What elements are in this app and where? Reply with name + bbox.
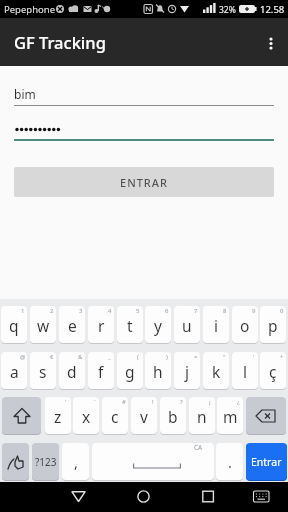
button[interactable]: r [88,306,114,343]
staticText: u [182,315,192,336]
button[interactable]: p [260,306,286,343]
button[interactable]: u [174,306,200,343]
staticText: ?123 [35,455,57,469]
button[interactable]: k [203,352,229,389]
button[interactable] [245,482,278,512]
staticText: ' [65,398,67,406]
staticText: ! [152,398,154,406]
button[interactable]: ENTRAR [14,167,274,197]
button[interactable]: l [232,352,258,389]
button[interactable]: i [203,306,229,343]
button[interactable]: s [30,352,56,389]
staticText: r [98,315,105,336]
staticText: 5 [136,307,140,315]
button[interactable] [2,397,41,434]
button[interactable]: g [117,352,143,389]
button[interactable]: n [189,397,215,434]
button[interactable] [62,482,95,512]
staticText: 32% [219,4,236,16]
staticText: s [39,361,47,382]
staticText: p [268,315,278,336]
staticText: q [9,315,19,336]
button[interactable]: c [102,397,128,434]
staticText: bim [14,86,36,102]
button[interactable]: d [59,352,85,389]
button[interactable]: b [160,397,186,434]
staticText: 4 [108,307,112,315]
button[interactable]: , [62,443,89,480]
staticText: x [82,406,91,427]
staticText: g [125,361,135,382]
staticText: GF Tracking [14,31,106,53]
button[interactable]: t [117,306,143,343]
staticText: ) [166,353,168,361]
staticText: ( [137,353,139,361]
staticText: m [223,406,238,427]
button[interactable]: m [217,397,243,434]
button[interactable]: z [45,397,71,434]
button[interactable]: . [216,443,243,480]
button[interactable]: v [131,397,157,434]
button[interactable]: w [30,306,56,343]
staticText: ? [180,398,183,406]
staticText: k [212,361,221,382]
staticText: 1 [21,307,25,315]
staticText: , [74,452,78,472]
button[interactable] [127,482,160,512]
staticText: 8 [223,307,227,315]
staticText: a [10,361,19,382]
staticText: e [68,315,77,336]
staticText: 9 [252,307,256,315]
staticText: l [243,361,247,382]
staticText: z [54,406,62,427]
staticText: + [280,353,284,361]
button[interactable] [246,397,286,434]
button[interactable]: j [174,352,200,389]
button[interactable]: x [73,397,99,434]
button[interactable]: ?123 [32,443,59,480]
button[interactable]: y [145,306,171,343]
button[interactable]: ç [260,352,286,389]
staticText: ¨ [93,398,97,406]
staticText: ç [269,361,277,382]
staticText: ENTRAR [120,175,168,190]
button[interactable] [191,482,224,512]
button[interactable] [2,443,29,480]
staticText: ¡ [209,398,211,406]
button[interactable] [258,29,284,55]
staticText: j [185,361,189,382]
staticText: c [111,406,119,427]
staticText: CA [194,443,203,452]
staticText: w [37,315,50,336]
staticText: b [168,406,178,427]
staticText: _ [108,353,111,361]
staticText: h [153,361,163,382]
button[interactable]: q [1,306,27,343]
staticText: € [50,353,54,361]
staticText: n [197,406,207,427]
staticText: 3 [79,307,83,315]
button[interactable]: Entrar [246,443,287,480]
staticText: " [223,353,226,361]
button[interactable]: e [59,306,85,343]
staticText: d [67,361,77,382]
staticText: 12.58 [260,3,285,16]
button[interactable]: o [232,306,258,343]
staticText: = [194,353,198,361]
staticText: 2 [50,307,54,315]
button[interactable]: h [145,352,171,389]
button[interactable]: a [1,352,27,389]
staticText: y [154,315,162,336]
button[interactable] [92,443,214,480]
staticText: Entrar [251,455,282,469]
staticText: @ [20,353,26,361]
staticText: v [140,406,148,427]
staticText: t [127,315,133,336]
staticText: ' [253,353,255,361]
button[interactable]: f [88,352,114,389]
staticText: # [122,398,126,406]
staticText: ¿ [237,398,240,406]
staticText: 7 [194,307,198,315]
